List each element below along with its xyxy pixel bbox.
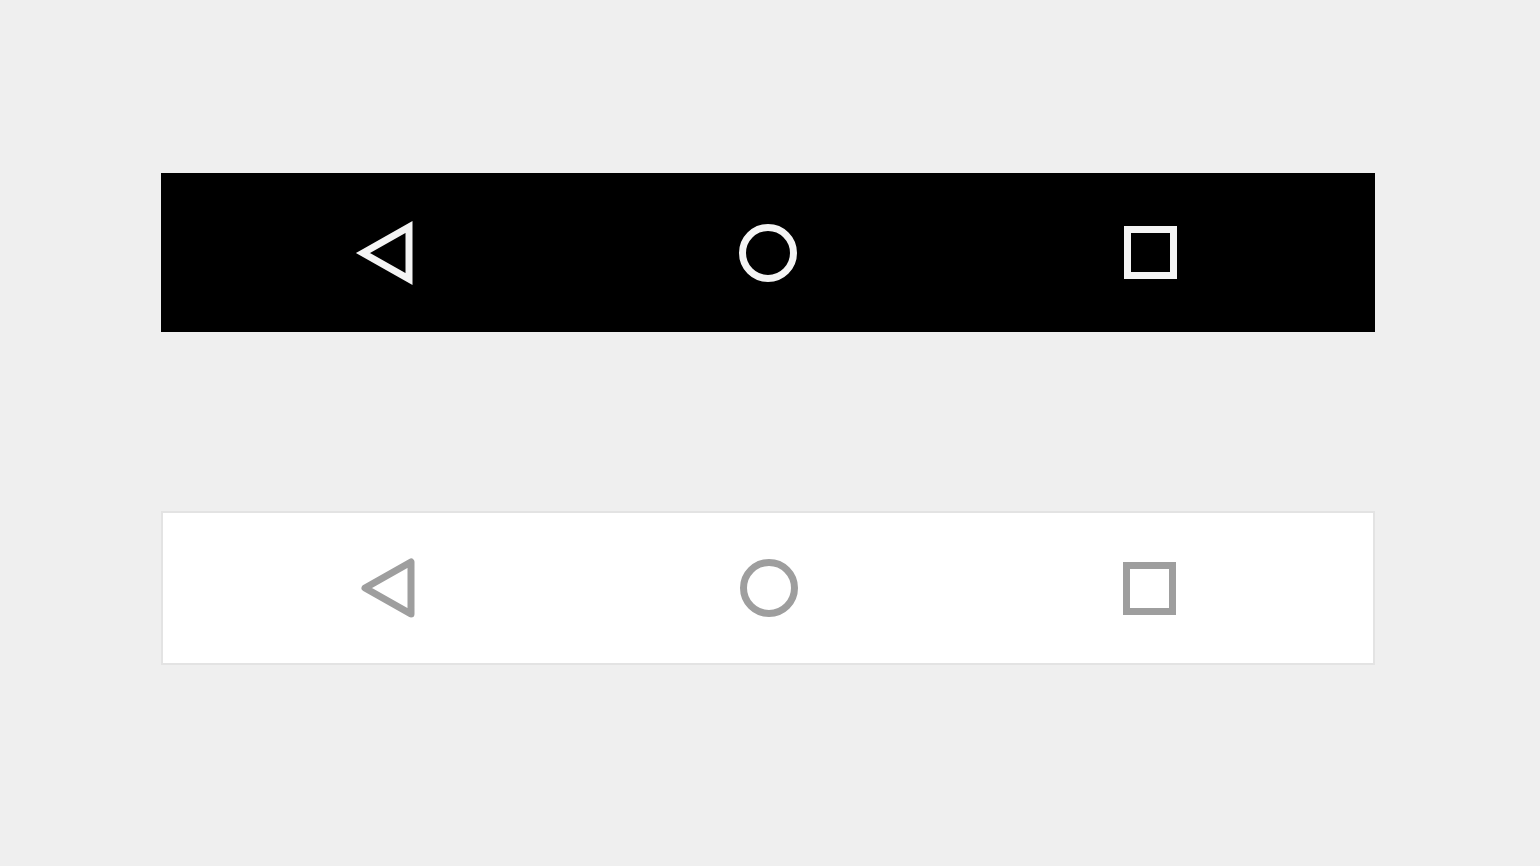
button[interactable]: Home <box>565 173 970 332</box>
button[interactable]: Back <box>206 173 565 332</box>
other: Home <box>740 559 798 617</box>
button[interactable]: Home <box>567 513 970 663</box>
other: Recent apps <box>1124 226 1177 279</box>
button[interactable]: Recent apps <box>970 513 1328 663</box>
button[interactable]: Back <box>208 513 567 663</box>
other: Home <box>739 224 797 282</box>
button[interactable]: Recent apps <box>970 173 1330 332</box>
other: Back <box>360 557 416 619</box>
other: Back <box>358 222 414 284</box>
other: Recent apps <box>1123 562 1176 615</box>
